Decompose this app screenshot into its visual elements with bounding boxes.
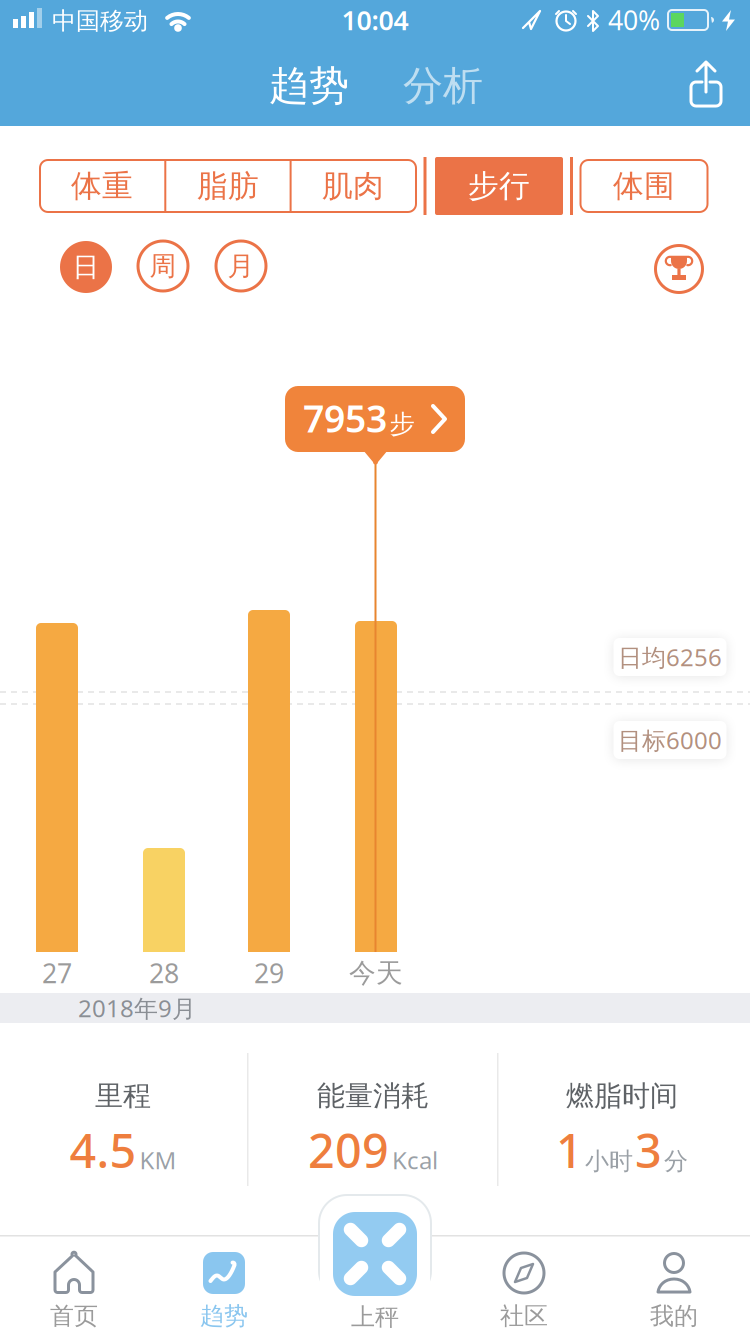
staticText: 步行 <box>468 167 530 205</box>
staticText: 里程 <box>95 1079 151 1113</box>
button[interactable]: 上秤 <box>315 1210 435 1334</box>
staticText: 27 <box>42 955 72 991</box>
staticText: 7953 <box>303 393 387 443</box>
staticText: 中国移动 <box>52 6 148 36</box>
button[interactable]: 趋势 <box>249 58 369 114</box>
button[interactable]: 7953 <box>285 386 465 452</box>
staticText: 体重 <box>71 167 133 205</box>
staticText: 小时 <box>585 1146 633 1176</box>
button[interactable]: 我的 <box>614 1235 734 1333</box>
staticText: 我的 <box>650 1301 698 1331</box>
button[interactable]: 首页 <box>14 1235 134 1333</box>
staticText: 周 <box>149 250 176 282</box>
button[interactable]: 肌肉 <box>291 160 415 212</box>
button[interactable]: 体围 <box>580 160 707 212</box>
staticText: KM <box>139 1144 176 1176</box>
staticText: 燃脂时间 <box>566 1079 678 1113</box>
staticText: 29 <box>254 955 284 991</box>
staticText: 体围 <box>613 167 675 205</box>
staticText: 日 <box>72 251 99 283</box>
staticText: 上秤 <box>351 1302 399 1332</box>
staticText: 日均6256 <box>618 641 722 673</box>
button[interactable]: 社区 <box>464 1235 584 1333</box>
staticText: 趋势 <box>269 61 349 110</box>
button[interactable]: 月 <box>216 241 266 291</box>
staticText: 1 <box>556 1119 583 1181</box>
staticText: 肌肉 <box>322 167 384 205</box>
staticText: 脂肪 <box>197 167 259 205</box>
staticText: 2018年9月 <box>78 992 196 1024</box>
button[interactable]: 趋势 <box>164 1235 284 1333</box>
staticText: 209 <box>308 1119 389 1181</box>
button[interactable]: 排行榜 <box>655 245 703 293</box>
staticText: 40% <box>608 2 660 38</box>
staticText: 目标6000 <box>618 724 722 756</box>
staticText: 步 <box>389 408 414 439</box>
button[interactable]: 脂肪 <box>166 160 290 212</box>
button[interactable]: 日 <box>60 241 112 293</box>
staticText: 10:04 <box>341 2 408 38</box>
staticText: 能量消耗 <box>317 1079 429 1113</box>
staticText: 分析 <box>403 61 483 110</box>
staticText: Kcal <box>392 1144 438 1176</box>
staticText: 28 <box>149 955 179 991</box>
staticText: 首页 <box>50 1301 98 1331</box>
staticText: 今天 <box>349 957 403 989</box>
button[interactable]: 周 <box>138 241 188 291</box>
staticText: 月 <box>227 250 254 282</box>
staticText: 社区 <box>500 1301 548 1331</box>
button[interactable]: 分析 <box>383 58 503 114</box>
button[interactable]: 体重 <box>40 160 164 212</box>
staticText: 分 <box>664 1146 688 1176</box>
button[interactable]: 步行 <box>435 157 563 215</box>
staticText: 3 <box>635 1119 662 1181</box>
staticText: 趋势 <box>200 1301 248 1331</box>
staticText: 4.5 <box>69 1119 136 1181</box>
button[interactable]: 分享 <box>690 60 722 108</box>
